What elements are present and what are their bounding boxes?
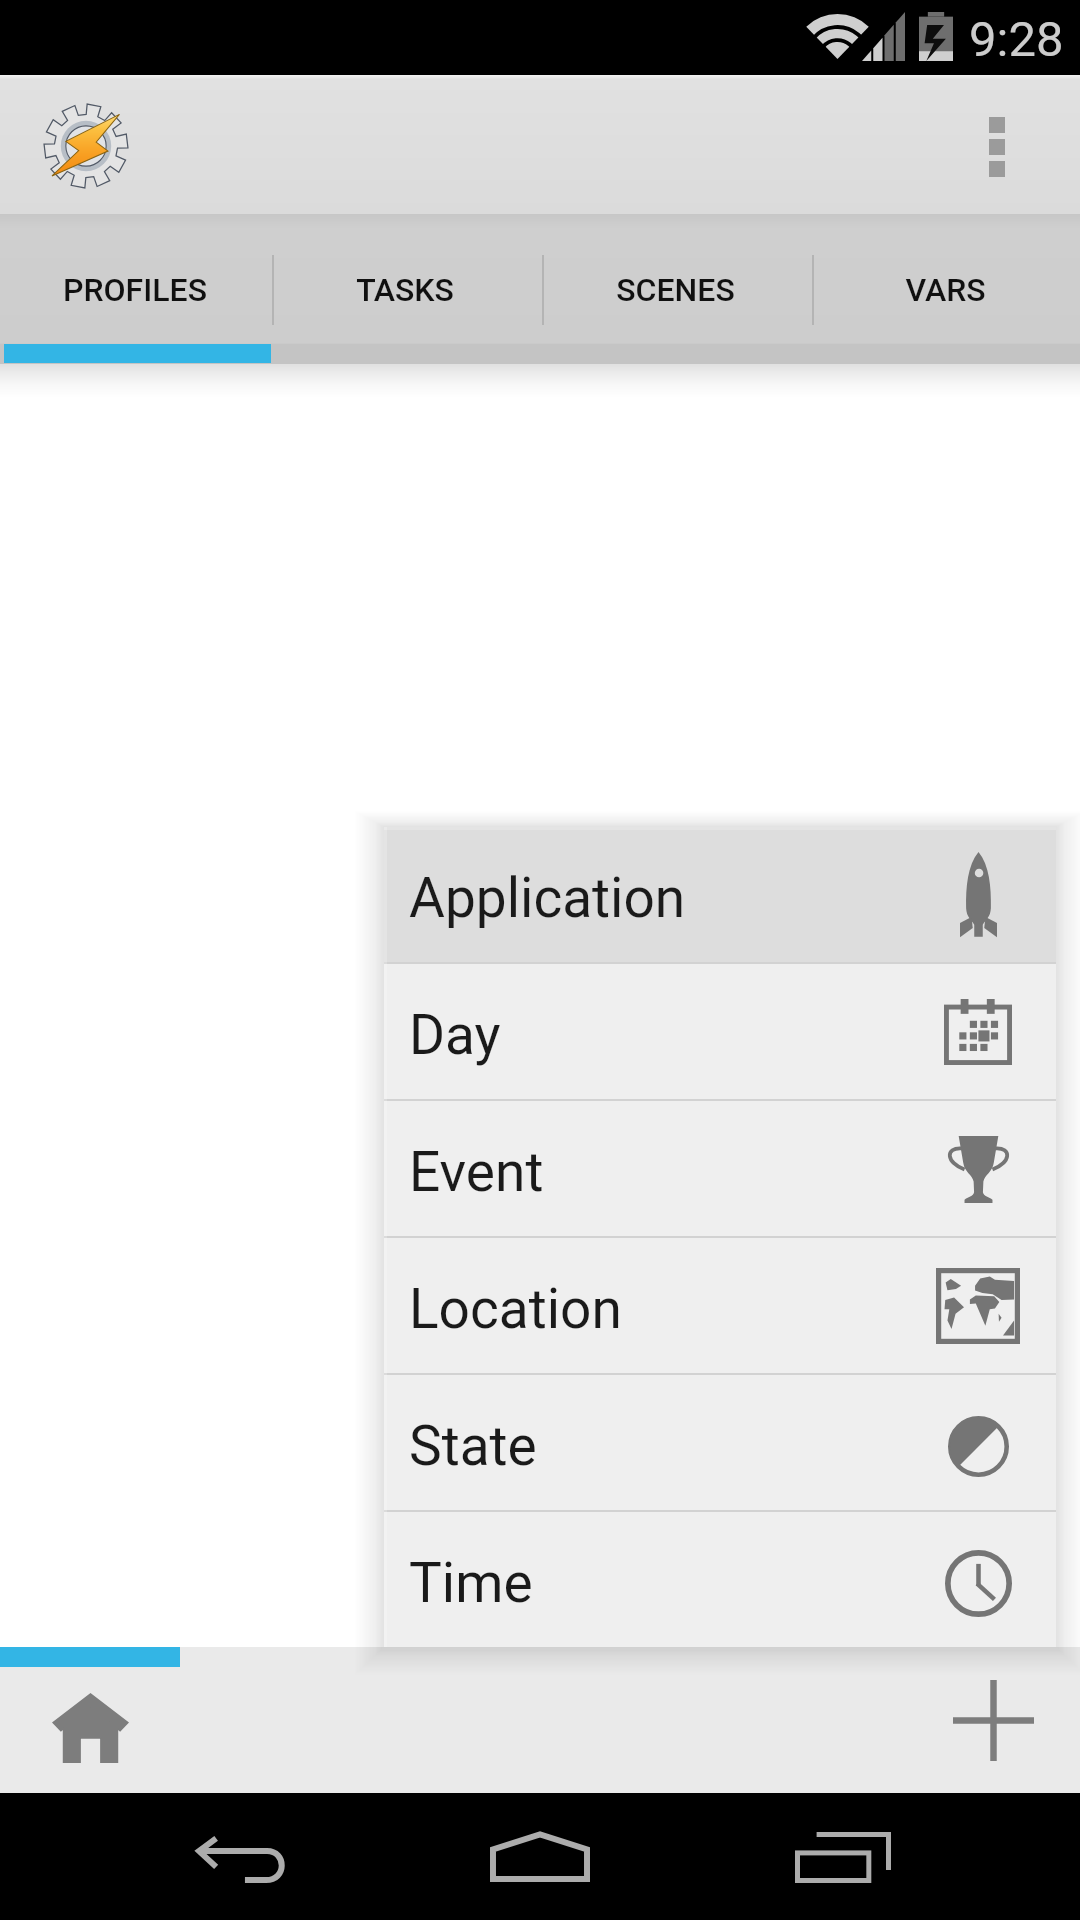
staticText: VARS	[905, 271, 986, 309]
button[interactable]: Home	[0, 1667, 180, 1793]
button[interactable]: PROFILES	[0, 214, 270, 344]
button[interactable]: State	[384, 1375, 1056, 1510]
button[interactable]: Location	[384, 1238, 1056, 1373]
button[interactable]: Event	[384, 1101, 1056, 1236]
staticText: 9:28	[969, 11, 1064, 68]
button[interactable]: VARS	[810, 214, 1080, 344]
button[interactable]: Home	[450, 1793, 630, 1920]
staticText: TASKS	[356, 271, 454, 309]
button[interactable]: SCENES	[540, 214, 810, 344]
button[interactable]: Day	[384, 964, 1056, 1099]
button[interactable]: Back	[151, 1793, 331, 1920]
button[interactable]: More options	[944, 75, 1080, 214]
staticText: Location	[409, 1277, 622, 1341]
button[interactable]: Application	[384, 827, 1056, 962]
staticText: Event	[409, 1140, 544, 1204]
staticText: SCENES	[616, 271, 735, 309]
staticText: State	[409, 1414, 537, 1478]
button[interactable]: Tasker	[0, 75, 160, 214]
staticText: Day	[409, 1003, 501, 1067]
staticText: Application	[409, 866, 686, 930]
button[interactable]: Recent apps	[754, 1793, 934, 1920]
staticText: Time	[409, 1551, 533, 1615]
staticText: PROFILES	[63, 271, 207, 309]
button[interactable]: Add	[910, 1667, 1080, 1793]
button[interactable]: Time	[384, 1512, 1056, 1647]
button[interactable]: TASKS	[270, 214, 540, 344]
